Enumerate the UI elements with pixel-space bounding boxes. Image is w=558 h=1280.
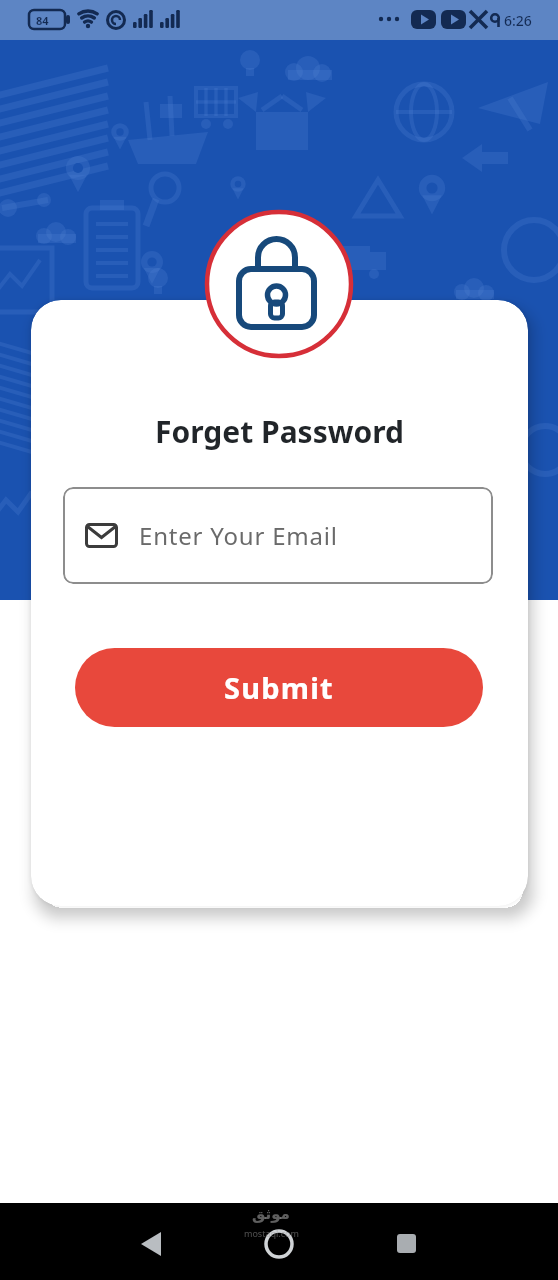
staticText: Forget Password: [155, 411, 404, 452]
staticText: Enter Your Email: [139, 519, 338, 552]
staticText: mostaql.com: [244, 1227, 299, 1239]
button[interactable]: Enter Your Email: [63, 487, 493, 584]
staticText: 84: [36, 13, 49, 28]
staticText: موثق: [252, 1205, 290, 1222]
staticText: Submit: [224, 668, 334, 707]
staticText: 6:26: [504, 11, 532, 30]
button[interactable]: Submit: [75, 648, 483, 727]
